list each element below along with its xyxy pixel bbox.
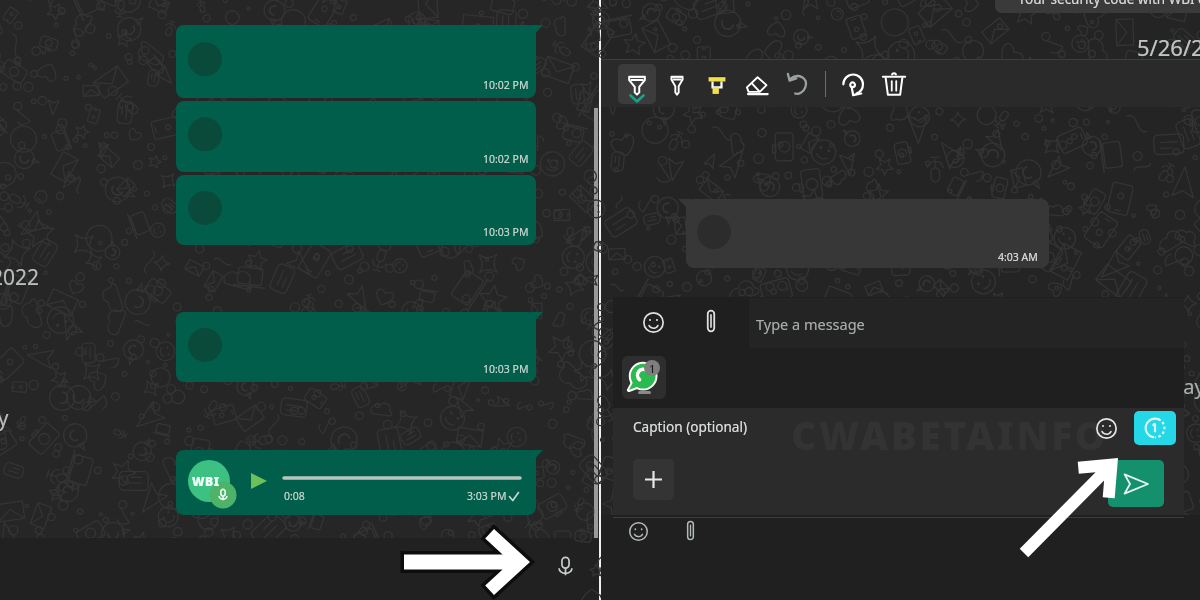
staticText: CWABETAINFO <box>791 408 1109 461</box>
button[interactable]: Eraser <box>738 64 776 104</box>
button[interactable]: Add <box>633 459 674 500</box>
button[interactable]: Sticker <box>622 356 666 399</box>
button[interactable]: Emoji <box>639 308 668 337</box>
button[interactable]: Attach <box>696 306 725 335</box>
button[interactable]: Undo <box>779 64 817 104</box>
button[interactable]: Send <box>1108 460 1164 507</box>
staticText: 10:03 PM <box>483 225 529 239</box>
staticText: 10:02 PM <box>483 78 529 92</box>
staticText: 10:02 PM <box>483 152 529 166</box>
staticText: Caption (optional) <box>633 417 748 436</box>
staticText: WBI <box>192 473 220 489</box>
button[interactable]: Emoji <box>1091 413 1121 443</box>
staticText: day <box>1171 373 1200 400</box>
staticText: Type a message <box>756 314 865 334</box>
staticText: ay <box>0 404 9 433</box>
button[interactable]: Voice message <box>549 550 581 582</box>
button[interactable]: View once <box>1134 411 1176 445</box>
button[interactable]: Attach file <box>676 516 704 544</box>
button[interactable]: Pen <box>618 64 656 104</box>
button[interactable]: Delete <box>875 64 913 104</box>
staticText: 3:03 PM <box>467 489 507 503</box>
staticText: 0:08 <box>284 489 305 503</box>
button[interactable]: Rotate <box>835 64 873 104</box>
staticText: Your security code with WBI changed <box>1018 0 1200 8</box>
button[interactable]: Emoji picker <box>624 517 652 545</box>
button[interactable]: Highlighter <box>698 64 736 104</box>
button[interactable]: Thin pen <box>658 64 696 104</box>
staticText: 5/26/20 <box>1137 32 1200 62</box>
staticText: 2022 <box>0 263 40 292</box>
staticText: 4:03 AM <box>998 250 1038 264</box>
staticText: 10:03 PM <box>483 362 529 376</box>
staticText: 1 <box>649 361 656 376</box>
